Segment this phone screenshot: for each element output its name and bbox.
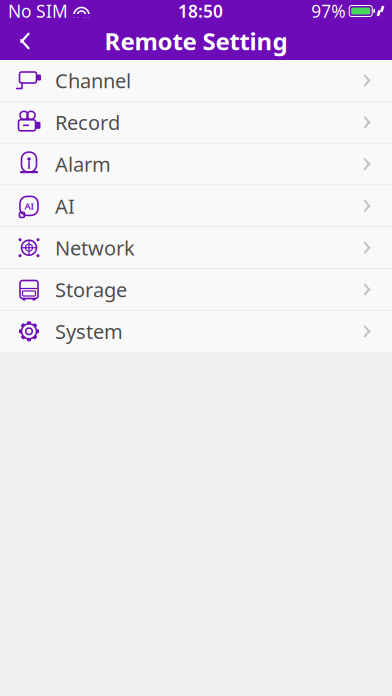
staticText: System bbox=[55, 318, 123, 345]
staticText: No SIM bbox=[8, 0, 68, 22]
staticText: AI bbox=[24, 200, 33, 212]
staticText: 97% bbox=[311, 0, 345, 22]
staticText: 18:50 bbox=[178, 0, 223, 22]
button[interactable]: Storage bbox=[0, 269, 392, 311]
button[interactable]: Channel bbox=[0, 60, 392, 102]
staticText: Record bbox=[55, 109, 120, 136]
staticText: Storage bbox=[55, 276, 127, 303]
button[interactable]: Alarm bbox=[0, 144, 392, 185]
button[interactable]: Network bbox=[0, 227, 392, 269]
button[interactable]: AI bbox=[0, 185, 392, 227]
button[interactable]: Record bbox=[0, 102, 392, 144]
staticText: Remote Setting bbox=[104, 25, 287, 57]
staticText: Network bbox=[55, 234, 135, 261]
staticText: Alarm bbox=[55, 151, 111, 177]
staticText: AI bbox=[55, 193, 75, 219]
button[interactable]: System bbox=[0, 311, 392, 353]
button[interactable]: Back bbox=[0, 22, 44, 60]
staticText: Channel bbox=[55, 67, 131, 94]
